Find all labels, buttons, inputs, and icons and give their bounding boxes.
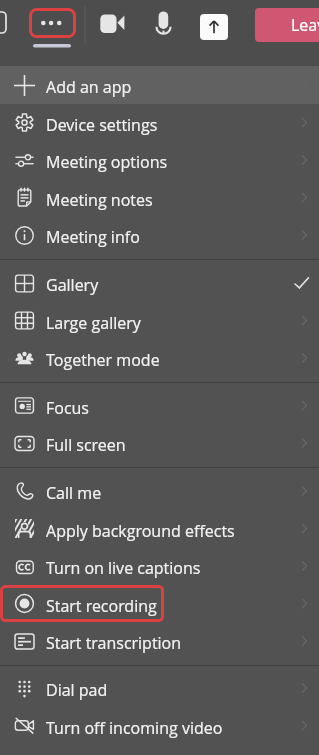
button[interactable]: Start transcription — [0, 622, 319, 660]
staticText: Start transcription — [46, 632, 182, 654]
staticText: Add an app — [46, 76, 132, 98]
button[interactable]: Leave — [255, 8, 319, 42]
staticText: Gallery — [46, 274, 99, 296]
staticText: Turn off incoming video — [46, 717, 223, 739]
staticText: Leave — [291, 14, 319, 36]
button[interactable]: Apply background effects — [0, 510, 319, 547]
button[interactable]: Share content — [200, 14, 228, 40]
staticText: Full screen — [46, 434, 126, 456]
staticText: Apply background effects — [46, 520, 235, 542]
button[interactable]: Focus — [0, 387, 319, 424]
staticText: Meeting notes — [46, 189, 153, 211]
button[interactable]: Full screen — [0, 424, 319, 462]
staticText: Dial pad — [46, 679, 108, 701]
staticText: Meeting options — [46, 151, 168, 173]
button[interactable]: Dial pad — [0, 669, 319, 707]
staticText: Together mode — [46, 349, 160, 371]
button[interactable]: Gallery — [0, 264, 319, 302]
button[interactable]: Start recording — [0, 585, 319, 622]
button[interactable]: More options — [29, 8, 76, 38]
staticText: Start recording — [46, 595, 157, 617]
button[interactable]: Microphone — [148, 5, 179, 43]
button[interactable]: Call me — [0, 472, 319, 510]
staticText: Device settings — [46, 114, 158, 136]
staticText: Call me — [46, 482, 102, 504]
button[interactable]: Turn off incoming video — [0, 707, 319, 744]
staticText: Meeting info — [46, 226, 140, 248]
button[interactable]: Add an app — [0, 66, 319, 104]
button[interactable]: Large gallery — [0, 302, 319, 339]
button[interactable]: Together mode — [0, 339, 319, 377]
button[interactable]: Turn on live captions — [0, 547, 319, 585]
staticText: Focus — [46, 397, 89, 419]
button[interactable]: Meeting info — [0, 216, 319, 254]
staticText: Turn on live captions — [46, 557, 201, 579]
button[interactable]: Camera — [96, 5, 128, 43]
button[interactable]: Device settings — [0, 104, 319, 141]
staticText: Large gallery — [46, 312, 141, 334]
button[interactable]: Meeting notes — [0, 179, 319, 216]
button[interactable]: Meeting options — [0, 141, 319, 179]
